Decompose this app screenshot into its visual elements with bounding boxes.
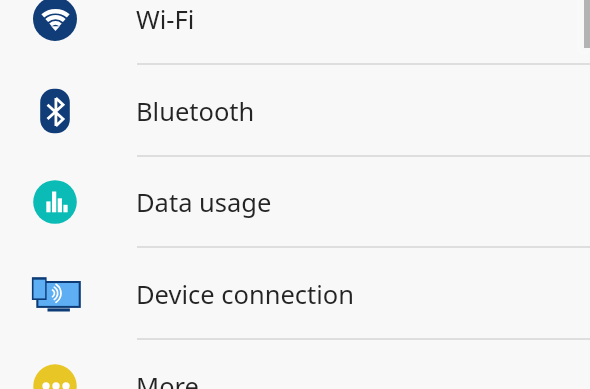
staticText: Device connection xyxy=(136,277,355,312)
button[interactable]: Wi-Fi xyxy=(0,0,590,65)
staticText: Data usage xyxy=(136,185,272,220)
staticText: Wi-Fi xyxy=(136,2,195,37)
button[interactable]: Bluetooth xyxy=(0,65,590,157)
staticText: More xyxy=(136,369,199,389)
button[interactable]: Data usage xyxy=(0,156,590,248)
staticText: Bluetooth xyxy=(136,94,255,129)
button[interactable]: More xyxy=(0,340,590,389)
button[interactable]: Device connection xyxy=(0,248,590,340)
